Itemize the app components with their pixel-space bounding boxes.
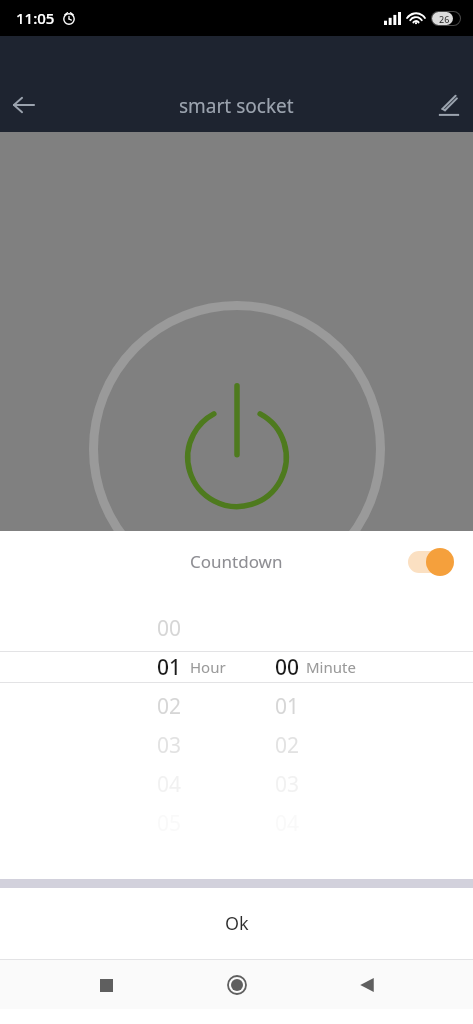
button[interactable]: 03 [0,730,182,760]
staticText: 02 [275,731,300,760]
staticText: 26 [439,13,450,25]
button[interactable]: 00 [0,613,182,643]
staticText: 01 [275,692,300,721]
staticText: 04 [157,770,182,799]
button[interactable]: Ok [0,888,473,959]
staticText: 11:05 [16,8,55,28]
button[interactable]: 02 [0,691,182,721]
other: Countdown switch [404,547,456,577]
button[interactable]: Back [0,81,48,129]
staticText: 03 [275,770,300,799]
button[interactable]: Countdown [0,531,473,592]
button[interactable]: Edit [425,81,473,129]
staticText: 03 [157,731,182,760]
staticText: Hour [190,657,226,677]
button[interactable]: 01 [0,652,182,682]
staticText: Ok [225,911,249,936]
staticText: 01 [157,653,182,682]
button[interactable]: 00 [0,652,300,682]
staticText: Countdown [190,550,283,573]
button[interactable]: 02 [0,730,300,760]
button[interactable]: Back [343,961,391,1009]
staticText: Minute [306,657,356,677]
button[interactable]: Power toggle [89,301,385,597]
button[interactable]: Recent apps [82,961,130,1009]
button[interactable]: 01 [0,691,300,721]
staticText: smart socket [179,93,294,119]
staticText: 00 [157,614,182,643]
staticText: 00 [275,653,300,682]
button[interactable]: Home [213,961,261,1009]
staticText: 02 [157,692,182,721]
